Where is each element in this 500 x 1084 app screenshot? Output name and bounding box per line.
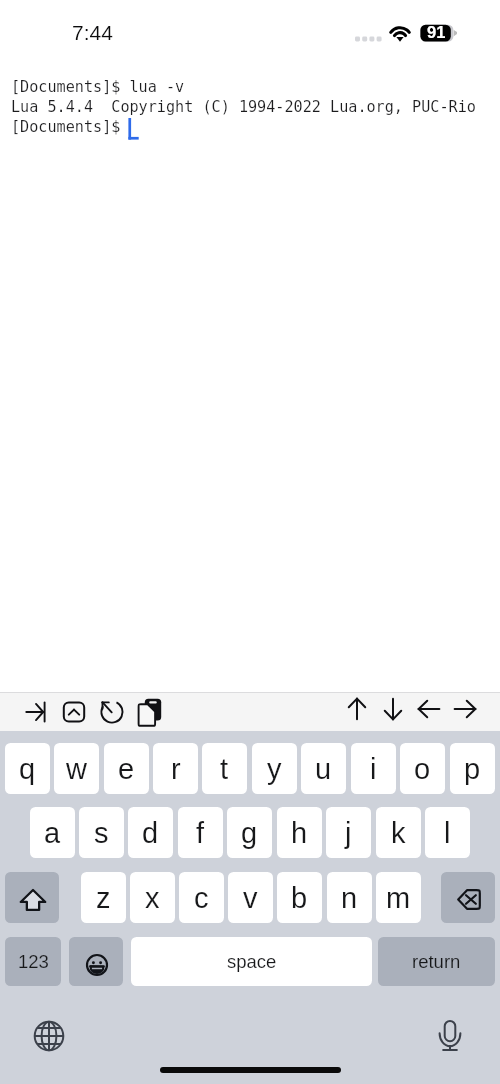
staticText: return xyxy=(412,951,461,972)
staticText: 7:44 xyxy=(72,21,113,44)
button[interactable]: Tab xyxy=(17,692,55,731)
staticText: [Documents]$ xyxy=(11,118,121,136)
button[interactable]: Control xyxy=(55,692,93,731)
button[interactable]: s xyxy=(79,807,124,858)
staticText: t xyxy=(220,753,229,785)
staticText: n xyxy=(341,882,358,914)
button[interactable]: p xyxy=(450,743,495,794)
button[interactable]: l xyxy=(425,807,470,858)
button[interactable]: o xyxy=(400,743,445,794)
staticText: c xyxy=(194,882,209,914)
staticText: y xyxy=(267,753,282,785)
button[interactable]: n xyxy=(327,872,372,923)
button[interactable]: g xyxy=(227,807,272,858)
staticText: k xyxy=(391,817,406,849)
staticText: s xyxy=(94,817,109,849)
button[interactable]: Dictation xyxy=(439,1020,461,1052)
staticText: f xyxy=(196,817,205,849)
staticText: [Documents]$ lua -v xyxy=(11,78,185,96)
staticText: h xyxy=(291,817,308,849)
staticText: z xyxy=(96,882,111,914)
staticText: g xyxy=(241,817,258,849)
button[interactable]: Undo xyxy=(93,692,131,731)
button[interactable]: w xyxy=(54,743,99,794)
staticText: m xyxy=(386,882,411,914)
button[interactable]: j xyxy=(326,807,371,858)
staticText: w xyxy=(66,753,87,785)
button[interactable]: h xyxy=(277,807,322,858)
staticText: d xyxy=(142,817,159,849)
button[interactable]: return xyxy=(378,937,495,986)
button[interactable]: Arrow up xyxy=(339,692,375,731)
button[interactable]: Emoji xyxy=(69,937,123,986)
button[interactable]: Arrow down xyxy=(375,692,411,731)
button[interactable]: x xyxy=(130,872,175,923)
staticText: v xyxy=(243,882,258,914)
staticText: e xyxy=(118,753,135,785)
staticText: i xyxy=(370,753,377,785)
button[interactable]: Arrow left xyxy=(411,692,447,731)
button[interactable]: space xyxy=(131,937,372,986)
button[interactable]: m xyxy=(376,872,421,923)
button[interactable]: a xyxy=(30,807,75,858)
button[interactable]: 123 xyxy=(5,937,61,986)
staticText: 91 xyxy=(427,23,446,41)
button[interactable]: i xyxy=(351,743,396,794)
button[interactable]: Shift xyxy=(5,872,59,923)
staticText: 123 xyxy=(18,951,49,972)
staticText: j xyxy=(345,817,352,849)
button[interactable]: d xyxy=(128,807,173,858)
staticText: l xyxy=(444,817,451,849)
button[interactable]: Switch keyboard xyxy=(33,1020,65,1052)
button[interactable]: e xyxy=(104,743,149,794)
button[interactable]: c xyxy=(179,872,224,923)
staticText: x xyxy=(145,882,160,914)
button[interactable]: r xyxy=(153,743,198,794)
button[interactable]: q xyxy=(5,743,50,794)
button[interactable]: u xyxy=(301,743,346,794)
staticText: o xyxy=(414,753,431,785)
button[interactable]: Paste xyxy=(131,692,169,731)
staticText: a xyxy=(44,817,61,849)
staticText: space xyxy=(227,951,277,972)
button[interactable]: Arrow right xyxy=(447,692,483,731)
staticText: r xyxy=(171,753,181,785)
staticText: b xyxy=(291,882,308,914)
button[interactable]: Backspace xyxy=(441,872,495,923)
button[interactable]: z xyxy=(81,872,126,923)
staticText: Lua 5.4.4 Copyright (C) 1994-2022 Lua.or… xyxy=(11,98,476,116)
button[interactable]: f xyxy=(178,807,223,858)
button[interactable]: b xyxy=(277,872,322,923)
button[interactable]: v xyxy=(228,872,273,923)
button[interactable]: k xyxy=(376,807,421,858)
button[interactable]: t xyxy=(202,743,247,794)
staticText: p xyxy=(464,753,481,785)
staticText: q xyxy=(19,753,36,785)
staticText: u xyxy=(315,753,332,785)
button[interactable]: y xyxy=(252,743,297,794)
